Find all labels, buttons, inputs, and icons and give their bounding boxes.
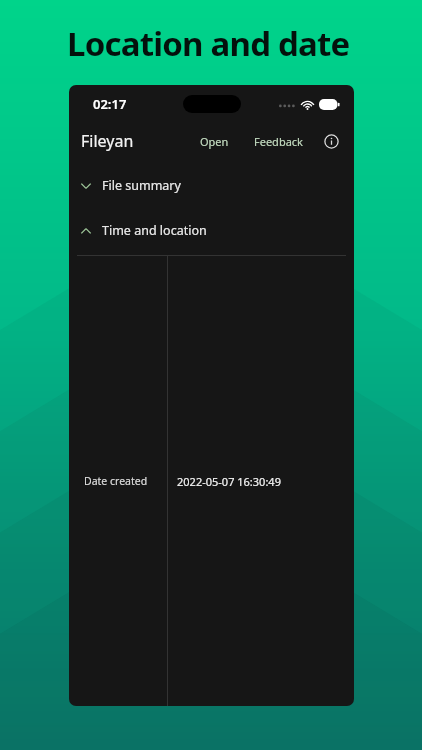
staticText: Open [200,134,229,149]
button[interactable]: Open [194,130,235,153]
staticText: Time and location [102,222,207,239]
staticText: 2022-05-07 16:30:49 [177,474,281,489]
staticText: Feedback [254,134,303,149]
staticText: 02:17 [93,95,127,113]
button[interactable]: Date created [77,256,346,706]
staticText: Location and date [67,21,350,66]
button[interactable]: Time and location [69,220,354,241]
staticText: File summary [102,177,181,194]
button[interactable]: Feedback [248,130,309,153]
button[interactable]: Info [320,130,342,152]
button[interactable]: Fileyan [78,130,137,152]
button[interactable]: File summary [69,175,354,196]
staticText: Date created [84,474,148,488]
